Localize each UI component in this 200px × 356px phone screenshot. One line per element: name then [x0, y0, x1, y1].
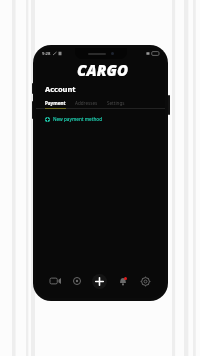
staticText: Account	[45, 84, 76, 94]
staticText: Payment	[45, 100, 66, 106]
button[interactable]: Discover	[66, 268, 88, 294]
staticText: New payment method	[53, 116, 103, 122]
button[interactable]: Notifications	[111, 268, 134, 294]
staticText: Settings	[107, 100, 125, 106]
button[interactable]: New payment method	[36, 115, 165, 123]
button[interactable]: Video	[44, 268, 66, 294]
button[interactable]: Payment	[45, 100, 66, 106]
staticText: CARGO	[77, 60, 128, 78]
staticText: 9:28	[42, 51, 51, 57]
staticText: Addresses	[75, 100, 98, 106]
button[interactable]: Addresses	[75, 100, 98, 106]
button[interactable]: Settings	[107, 100, 125, 106]
button[interactable]: Settings	[134, 268, 157, 294]
button[interactable]: Add	[88, 268, 111, 294]
